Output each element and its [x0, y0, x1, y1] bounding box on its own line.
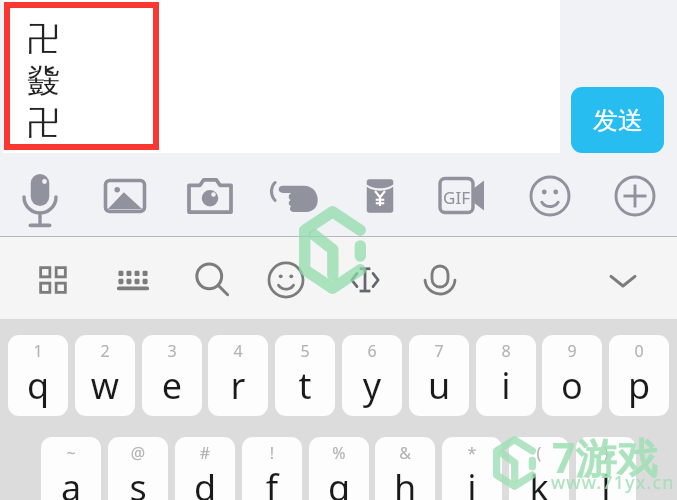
staticText: 1	[8, 340, 68, 362]
button[interactable]: &	[375, 437, 435, 500]
button[interactable]: 2	[75, 335, 135, 416]
staticText: 7游戏	[552, 429, 658, 485]
button[interactable]: ~	[41, 437, 101, 500]
button[interactable]: Camera	[185, 171, 235, 221]
staticText: y	[342, 361, 402, 410]
button[interactable]: GIF	[437, 171, 487, 221]
button[interactable]: 9	[542, 335, 602, 416]
button[interactable]: Emoji	[263, 257, 309, 303]
staticText: t	[275, 361, 335, 410]
button[interactable]: Voice message	[15, 171, 65, 221]
button[interactable]: @	[108, 437, 168, 500]
staticText: 鼗	[27, 60, 60, 102]
button[interactable]: !	[242, 437, 302, 500]
staticText: 8	[476, 340, 536, 362]
staticText: 发送	[593, 105, 643, 136]
staticText: d	[175, 463, 235, 500]
staticText: (	[509, 442, 569, 464]
button[interactable]: )	[576, 437, 636, 500]
staticText: e	[142, 361, 202, 410]
button[interactable]: 5	[275, 335, 335, 416]
button[interactable]: 3	[142, 335, 202, 416]
staticText: 0	[609, 340, 669, 362]
staticText: 6	[342, 340, 402, 362]
staticText: 9	[542, 340, 602, 362]
staticText: 3	[142, 340, 202, 362]
button[interactable]: Hide keyboard	[600, 257, 646, 303]
button[interactable]: Search	[189, 257, 235, 303]
staticText: j	[442, 463, 502, 500]
staticText: w	[75, 361, 135, 410]
button[interactable]: Red packet	[355, 171, 405, 221]
staticText: @	[108, 442, 168, 464]
staticText: &	[375, 442, 435, 464]
button[interactable]: Emoji	[525, 171, 575, 221]
staticText: r	[208, 361, 268, 410]
staticText: l	[576, 463, 636, 500]
staticText: s	[108, 463, 168, 500]
button[interactable]: 4	[208, 335, 268, 416]
button[interactable]: Keyboard	[110, 257, 156, 303]
staticText: u	[409, 361, 469, 410]
staticText: o	[542, 361, 602, 410]
staticText: p	[609, 361, 669, 410]
staticText: 卍	[27, 18, 60, 60]
staticText: #	[175, 442, 235, 464]
button[interactable]: 8	[476, 335, 536, 416]
staticText: q	[8, 361, 68, 410]
button[interactable]: Handwriting	[270, 171, 320, 221]
staticText: g	[309, 463, 369, 500]
button[interactable]: 6	[342, 335, 402, 416]
staticText: k	[509, 463, 569, 500]
button[interactable]: (	[509, 437, 569, 500]
staticText: ~	[41, 442, 101, 464]
staticText: www.71yx.cn	[551, 470, 675, 495]
button[interactable]: Photo	[100, 171, 150, 221]
staticText: !	[242, 442, 302, 464]
staticText: 2	[75, 340, 135, 362]
button[interactable]: More	[610, 171, 660, 221]
staticText: GIF	[440, 186, 473, 209]
staticText: 卍	[27, 102, 60, 144]
staticText: h	[375, 463, 435, 500]
button[interactable]: *	[442, 437, 502, 500]
staticText: 5	[275, 340, 335, 362]
button[interactable]: %	[309, 437, 369, 500]
staticText: *	[442, 442, 502, 464]
button[interactable]: Apps	[30, 257, 76, 303]
staticText: 7	[409, 340, 469, 362]
staticText: 4	[208, 340, 268, 362]
button[interactable]: #	[175, 437, 235, 500]
staticText: a	[41, 463, 101, 500]
staticText: f	[242, 463, 302, 500]
button[interactable]: Move cursor	[342, 257, 388, 303]
button[interactable]: 7	[409, 335, 469, 416]
button[interactable]: Voice input	[417, 257, 463, 303]
button[interactable]: 发送	[571, 87, 664, 153]
staticText: i	[476, 361, 536, 410]
staticText: )	[576, 442, 636, 464]
staticText: %	[309, 442, 369, 464]
button[interactable]: 0	[609, 335, 669, 416]
button[interactable]: 1	[8, 335, 68, 416]
